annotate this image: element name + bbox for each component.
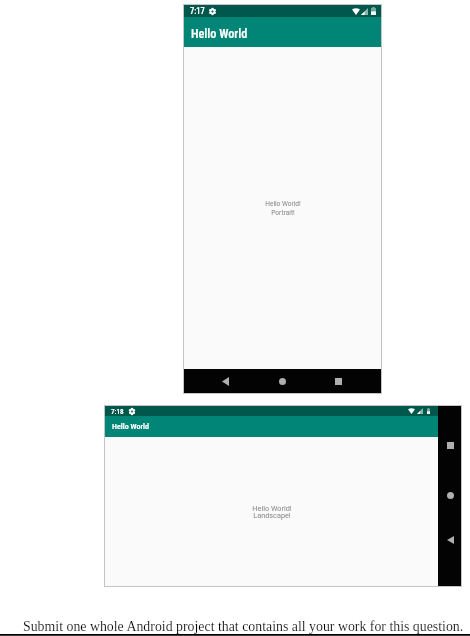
button[interactable]: Back [216, 372, 234, 390]
staticText: Hello World! Landscape! [252, 504, 292, 520]
staticText: Hello World [112, 422, 149, 431]
button[interactable]: Recents [329, 372, 347, 390]
staticText: Submit one whole Android project that co… [23, 619, 464, 634]
button[interactable]: Home [441, 486, 459, 504]
button[interactable]: Recents [441, 436, 459, 454]
staticText: Hello World [191, 27, 248, 41]
staticText: 7:17 [190, 6, 205, 16]
button[interactable]: Back [441, 531, 459, 549]
staticText: 7:18 [111, 407, 124, 415]
staticText: Hello World! Portrait! [265, 200, 301, 216]
button[interactable]: Home [273, 372, 291, 390]
